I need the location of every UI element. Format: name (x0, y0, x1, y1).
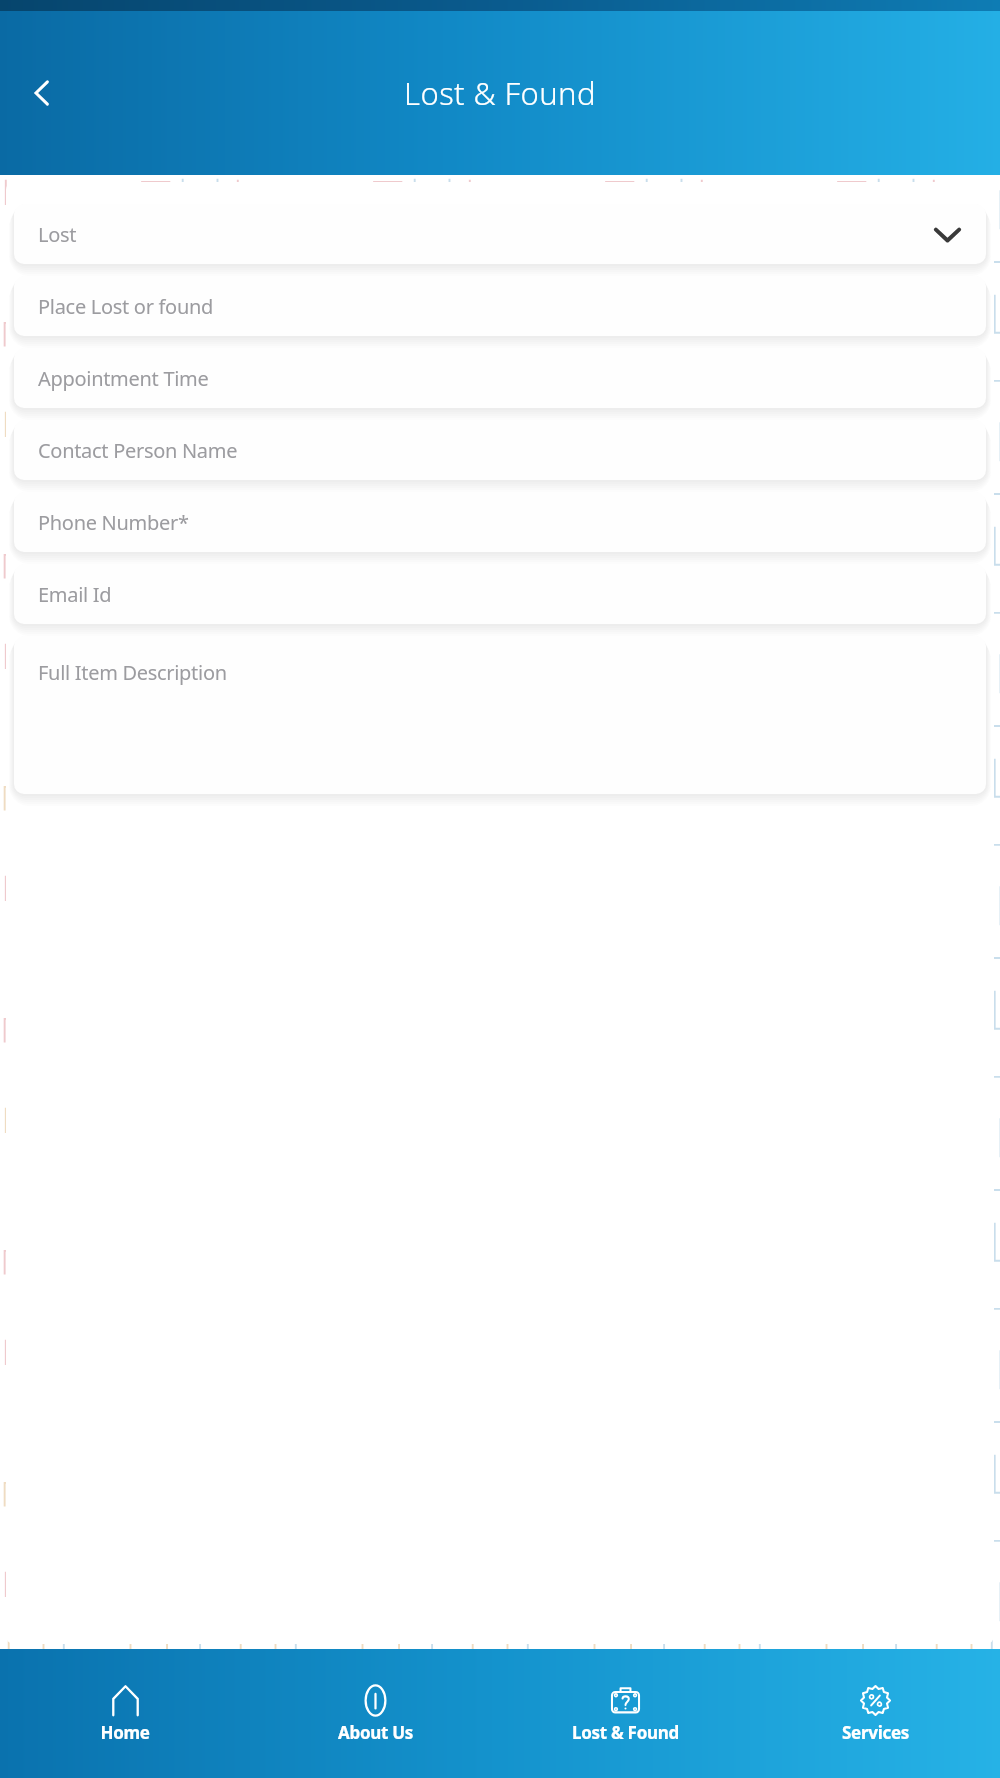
staticText: Phone Number* (38, 509, 189, 536)
button[interactable]: Phone Number* (14, 492, 986, 552)
staticText: Lost (38, 221, 77, 248)
staticText: Contact Person Name (38, 437, 238, 464)
button[interactable]: Full Item Description (14, 636, 986, 794)
staticText: About Us (338, 1721, 413, 1744)
staticText: Place Lost or found (38, 293, 213, 320)
button[interactable]: Services (750, 1649, 1000, 1778)
button[interactable]: Home (0, 1649, 250, 1778)
staticText: Lost & Found (572, 1721, 679, 1744)
button[interactable]: Contact Person Name (14, 420, 986, 480)
staticText: Home (100, 1721, 150, 1744)
button[interactable]: About Us (250, 1649, 500, 1778)
staticText: Lost & Found (404, 72, 596, 114)
staticText: Full Item Description (38, 659, 227, 686)
button[interactable]: Lost (14, 204, 986, 264)
button[interactable]: Place Lost or found (14, 276, 986, 336)
button[interactable]: Back (17, 68, 67, 118)
button[interactable]: Lost & Found (500, 1649, 750, 1778)
button[interactable]: Email Id (14, 564, 986, 624)
staticText: Email Id (38, 581, 112, 608)
button[interactable]: Appointment Time (14, 348, 986, 408)
staticText: Appointment Time (38, 365, 209, 392)
staticText: Services (842, 1721, 909, 1744)
